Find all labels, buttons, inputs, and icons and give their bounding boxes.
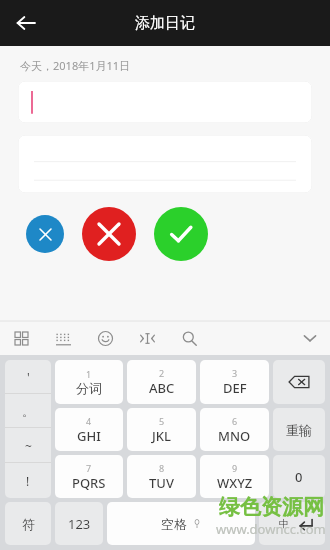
staticText: ! [26,473,30,489]
button[interactable]: ' [5,360,51,498]
staticText: TUV [149,474,174,492]
staticText: 4 [86,415,92,427]
button[interactable]: Cancel [82,207,136,261]
staticText: 2 [159,367,165,379]
staticText: 8 [159,462,165,474]
staticText: 绿色资源网 [219,494,324,520]
button[interactable]: 1 [55,360,123,404]
staticText: www.downcc.com [216,520,326,538]
staticText: GHI [77,427,101,445]
button[interactable]: Move cursor [126,321,168,355]
staticText: 7 [86,462,92,474]
staticText: 0 [295,468,303,486]
button[interactable]: 4 [55,408,123,451]
button[interactable]: 0 [273,455,325,498]
button[interactable]: Hide keyboard [290,321,330,355]
staticText: 5 [159,415,165,427]
staticText: 9 [232,462,238,474]
button[interactable]: Clear [26,215,64,253]
button[interactable] [18,81,312,123]
staticText: 重输 [286,422,312,438]
button[interactable]: 8 [127,455,196,498]
staticText: 1 [86,368,92,380]
staticText: ' [27,369,30,385]
staticText: 添加日记 [135,14,195,33]
staticText: DEF [223,379,247,397]
staticText: 符 [22,516,35,532]
button[interactable]: Back [6,3,46,43]
button[interactable]: Enter [259,502,325,545]
staticText: JKL [152,427,171,445]
staticText: 。 [22,404,34,419]
staticText: MNO [218,427,251,445]
button[interactable]: Apps [0,321,42,355]
button[interactable]: 9 [200,455,269,498]
staticText: 6 [232,415,238,427]
button[interactable]: 5 [127,408,196,451]
button[interactable]: 2 [127,360,196,404]
staticText: 分词 [76,380,102,396]
button[interactable]: 6 [200,408,269,451]
button[interactable]: 重输 [273,408,325,451]
button[interactable]: Emoji [84,321,126,355]
button[interactable]: 空格 [107,502,255,545]
staticText: WXYZ [217,474,253,492]
button[interactable]: Confirm [154,207,208,261]
staticText: 3 [232,367,238,379]
button[interactable]: Backspace [273,360,325,404]
staticText: 中 [279,517,289,530]
staticText: 今天，2018年1月11日 [20,58,131,73]
button[interactable]: 7 [55,455,123,498]
staticText: 123 [68,515,91,533]
staticText: ~ [25,438,32,454]
staticText: ABC [149,379,175,397]
button[interactable]: Search [168,321,210,355]
staticText: PQRS [72,474,106,492]
button[interactable]: 3 [200,360,269,404]
button[interactable]: 符 [5,502,51,545]
button[interactable]: Keyboard [42,321,84,355]
button[interactable]: 123 [55,502,103,545]
staticText: 空格 [161,516,187,532]
